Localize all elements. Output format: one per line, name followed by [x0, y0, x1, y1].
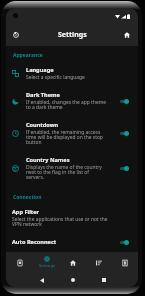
staticText: Select the applications that use or not … — [12, 216, 115, 228]
staticText: Countdown — [26, 121, 59, 129]
button[interactable]: Servers — [86, 252, 112, 273]
staticText: If enabled, changes the app theme to a d… — [26, 99, 106, 111]
button[interactable]: Apps — [6, 252, 33, 273]
staticText: Dark Theme — [26, 91, 60, 99]
staticText: If enabled, the remaining access time wi… — [26, 129, 106, 146]
button[interactable]: Auto Reconnect — [6, 233, 138, 252]
button[interactable]: Toggle — [120, 131, 129, 136]
button[interactable]: Toggle — [120, 240, 129, 245]
staticText: Auto Reconnect — [12, 238, 57, 246]
staticText: App Filter — [12, 208, 40, 216]
staticText: Appearance — [13, 52, 43, 59]
staticText: Connection — [13, 194, 42, 201]
button[interactable]: Account — [112, 252, 138, 273]
staticText: Language — [26, 66, 54, 74]
button[interactable]: Home — [119, 27, 135, 43]
button[interactable]: App Filter — [6, 203, 138, 233]
staticText: Displays the name of the country next to… — [26, 164, 106, 181]
button[interactable]: Recent apps — [88, 273, 119, 287]
staticText: Country Names — [26, 156, 70, 164]
button[interactable]: Language — [6, 61, 138, 86]
button[interactable]: Home — [57, 273, 88, 287]
button[interactable]: Toggle — [120, 99, 129, 104]
staticText: Settings — [39, 263, 55, 269]
staticText: Settings — [58, 30, 87, 40]
button[interactable]: Settings — [33, 252, 60, 273]
button[interactable]: Country Names — [6, 151, 138, 186]
button[interactable]: Toggle — [120, 166, 129, 171]
button[interactable]: Restore defaults — [8, 27, 24, 43]
staticText: Select a specific language — [26, 74, 85, 81]
button[interactable]: Back — [26, 273, 57, 287]
button[interactable]: Home — [60, 252, 86, 273]
button[interactable]: Countdown — [6, 116, 138, 151]
button[interactable]: Dark Theme — [6, 86, 138, 116]
